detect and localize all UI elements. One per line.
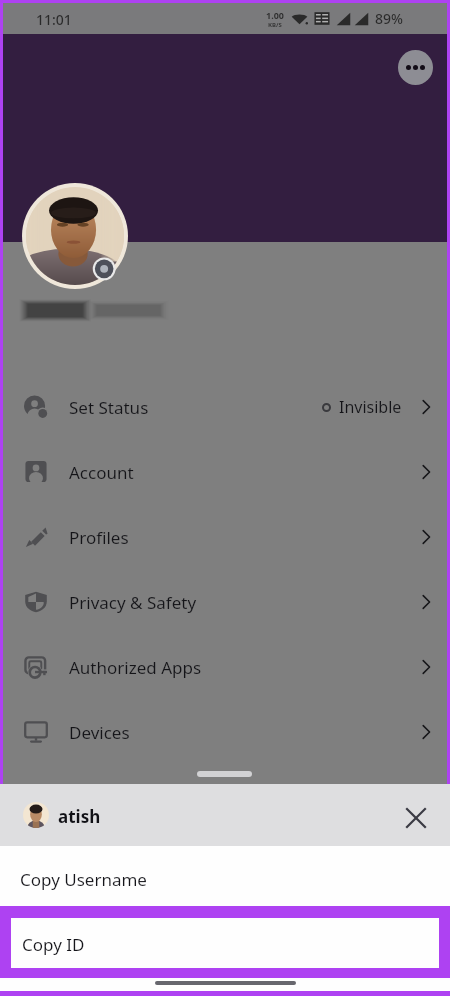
staticText: Authorized Apps [69,656,202,679]
button[interactable]: Account [3,439,447,504]
button[interactable]: Authorized Apps [3,634,447,699]
staticText: Copy ID [22,933,85,956]
staticText: KB/S [268,21,282,29]
staticText: Devices [69,721,130,744]
staticText: Profiles [69,526,129,549]
staticText: Invisible [339,396,402,418]
button[interactable]: Close [400,802,432,834]
button[interactable]: More options [398,50,433,85]
staticText: 11:01 [36,10,72,29]
staticText: Set Status [69,396,149,419]
button[interactable]: Set Status [3,374,447,439]
button[interactable]: Copy Username [0,846,450,906]
staticText: Privacy & Safety [69,591,197,614]
button[interactable]: Profiles [3,504,447,569]
button[interactable]: Copy ID [11,918,439,968]
staticText: atish [58,805,101,828]
staticText: 89% [375,9,403,28]
button[interactable]: Privacy & Safety [3,569,447,634]
staticText: Copy Username [20,868,147,891]
button[interactable]: Devices [3,699,447,764]
staticText: 1.00 [266,9,284,21]
staticText: Account [69,461,134,484]
